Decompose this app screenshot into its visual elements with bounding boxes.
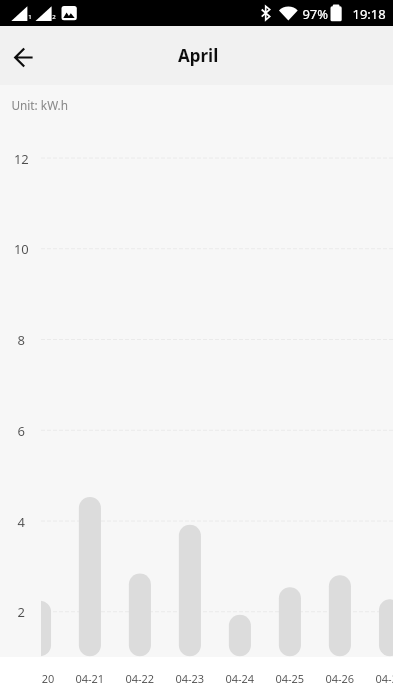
staticText: April — [178, 44, 219, 67]
button[interactable]: Back — [0, 26, 46, 85]
